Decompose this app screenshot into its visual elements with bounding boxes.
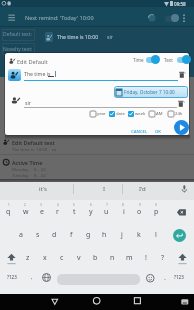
button[interactable]	[42, 273, 51, 282]
button[interactable]: m	[122, 248, 137, 267]
button[interactable]	[177, 253, 188, 266]
button[interactable]: ?	[155, 248, 170, 267]
button[interactable]	[165, 14, 180, 23]
button[interactable]	[175, 208, 191, 217]
staticText: sir	[107, 33, 113, 40]
button[interactable]: n	[105, 248, 120, 267]
button[interactable]: r	[50, 202, 65, 221]
button[interactable]: g	[81, 225, 96, 244]
button[interactable]	[181, 299, 189, 305]
button[interactable]: b	[88, 248, 103, 267]
staticText: k	[137, 230, 141, 240]
button[interactable]: f	[64, 225, 79, 244]
button[interactable]: date	[109, 110, 128, 118]
staticText: f	[70, 230, 73, 240]
button[interactable]	[146, 55, 161, 64]
staticText: !	[145, 253, 147, 263]
staticText: Friday, October 7 10:00	[124, 89, 175, 95]
button[interactable]	[177, 55, 192, 64]
button[interactable]: 24h	[168, 110, 187, 118]
staticText: c	[60, 253, 64, 263]
staticText: b	[93, 253, 98, 263]
button[interactable]: w	[18, 202, 33, 221]
staticText: v	[77, 253, 81, 263]
staticText: Next remind: 'Today' 10:00	[25, 14, 94, 21]
button[interactable]: k	[131, 225, 146, 244]
staticText: 9	[139, 203, 141, 207]
staticText: ?	[161, 253, 165, 263]
button[interactable]: week	[128, 110, 147, 118]
staticText: 09:58	[174, 1, 186, 7]
button[interactable]: it's	[28, 181, 58, 196]
staticText: week	[135, 111, 146, 117]
button[interactable]: The time is	[24, 70, 51, 77]
staticText: u	[104, 207, 109, 217]
button[interactable]: d	[47, 225, 62, 244]
button[interactable]: -	[159, 271, 171, 285]
button[interactable]: I	[89, 181, 119, 196]
staticText: ,	[31, 273, 33, 281]
staticText: g	[86, 230, 91, 240]
button[interactable]: Edit Default text	[12, 139, 55, 146]
button[interactable]	[181, 185, 188, 194]
button[interactable]	[6, 253, 17, 266]
button[interactable]: a	[13, 225, 28, 244]
button[interactable]	[181, 13, 187, 24]
staticText: Novelty text:	[3, 46, 33, 53]
button[interactable]: e	[34, 202, 49, 221]
button[interactable]	[134, 297, 142, 305]
button[interactable]	[179, 71, 186, 78]
button[interactable]: !	[138, 248, 153, 267]
button[interactable]: y	[83, 202, 98, 221]
staticText: e	[40, 207, 44, 217]
button[interactable]	[57, 274, 140, 285]
staticText: w	[23, 207, 29, 217]
staticText: 5	[73, 203, 75, 207]
staticText: l	[155, 230, 157, 240]
staticText: 6	[90, 203, 92, 207]
button[interactable]: OK	[155, 128, 162, 134]
button[interactable]: ?123	[171, 269, 187, 285]
button[interactable]	[51, 298, 59, 306]
staticText: o	[137, 207, 142, 217]
button[interactable]: ?123	[4, 269, 20, 285]
button[interactable]	[146, 274, 155, 283]
button[interactable]: sir	[25, 99, 31, 106]
button[interactable]: v	[71, 248, 86, 267]
staticText: I'd	[139, 185, 146, 193]
button[interactable]	[2, 43, 35, 55]
button[interactable]	[8, 69, 21, 81]
button[interactable]	[147, 13, 157, 23]
button[interactable]	[178, 100, 185, 107]
button[interactable]: z	[20, 248, 35, 267]
button[interactable]: Friday, October 7 10:00	[114, 86, 188, 98]
button[interactable]: ,	[24, 267, 39, 286]
staticText: h	[102, 230, 107, 240]
button[interactable]: u	[99, 202, 114, 221]
staticText: 4	[57, 203, 59, 207]
button[interactable]: year	[90, 110, 109, 118]
button[interactable]	[93, 297, 101, 305]
button[interactable]: j	[114, 225, 129, 244]
button[interactable]: p	[149, 202, 164, 221]
button[interactable]: h	[97, 225, 112, 244]
button[interactable]: x	[37, 248, 52, 267]
button[interactable]	[173, 229, 186, 242]
button[interactable]: t	[67, 202, 82, 221]
staticText: a	[19, 230, 23, 240]
button[interactable]	[7, 13, 16, 22]
button[interactable]	[174, 120, 189, 135]
button[interactable]: CANCEL	[131, 128, 148, 134]
button[interactable]: l	[148, 225, 163, 244]
button[interactable]	[2, 29, 35, 41]
staticText: Tuesday	[12, 172, 29, 178]
button[interactable]: q	[1, 202, 16, 221]
button[interactable]: i	[116, 202, 131, 221]
button[interactable]: Active Time	[12, 159, 43, 166]
button[interactable]: c	[54, 248, 69, 267]
staticText: it's	[39, 185, 47, 193]
button[interactable]: s	[30, 225, 45, 244]
button[interactable]: I'd	[127, 181, 157, 196]
button[interactable]: AM	[149, 110, 168, 118]
button[interactable]: o	[132, 202, 147, 221]
